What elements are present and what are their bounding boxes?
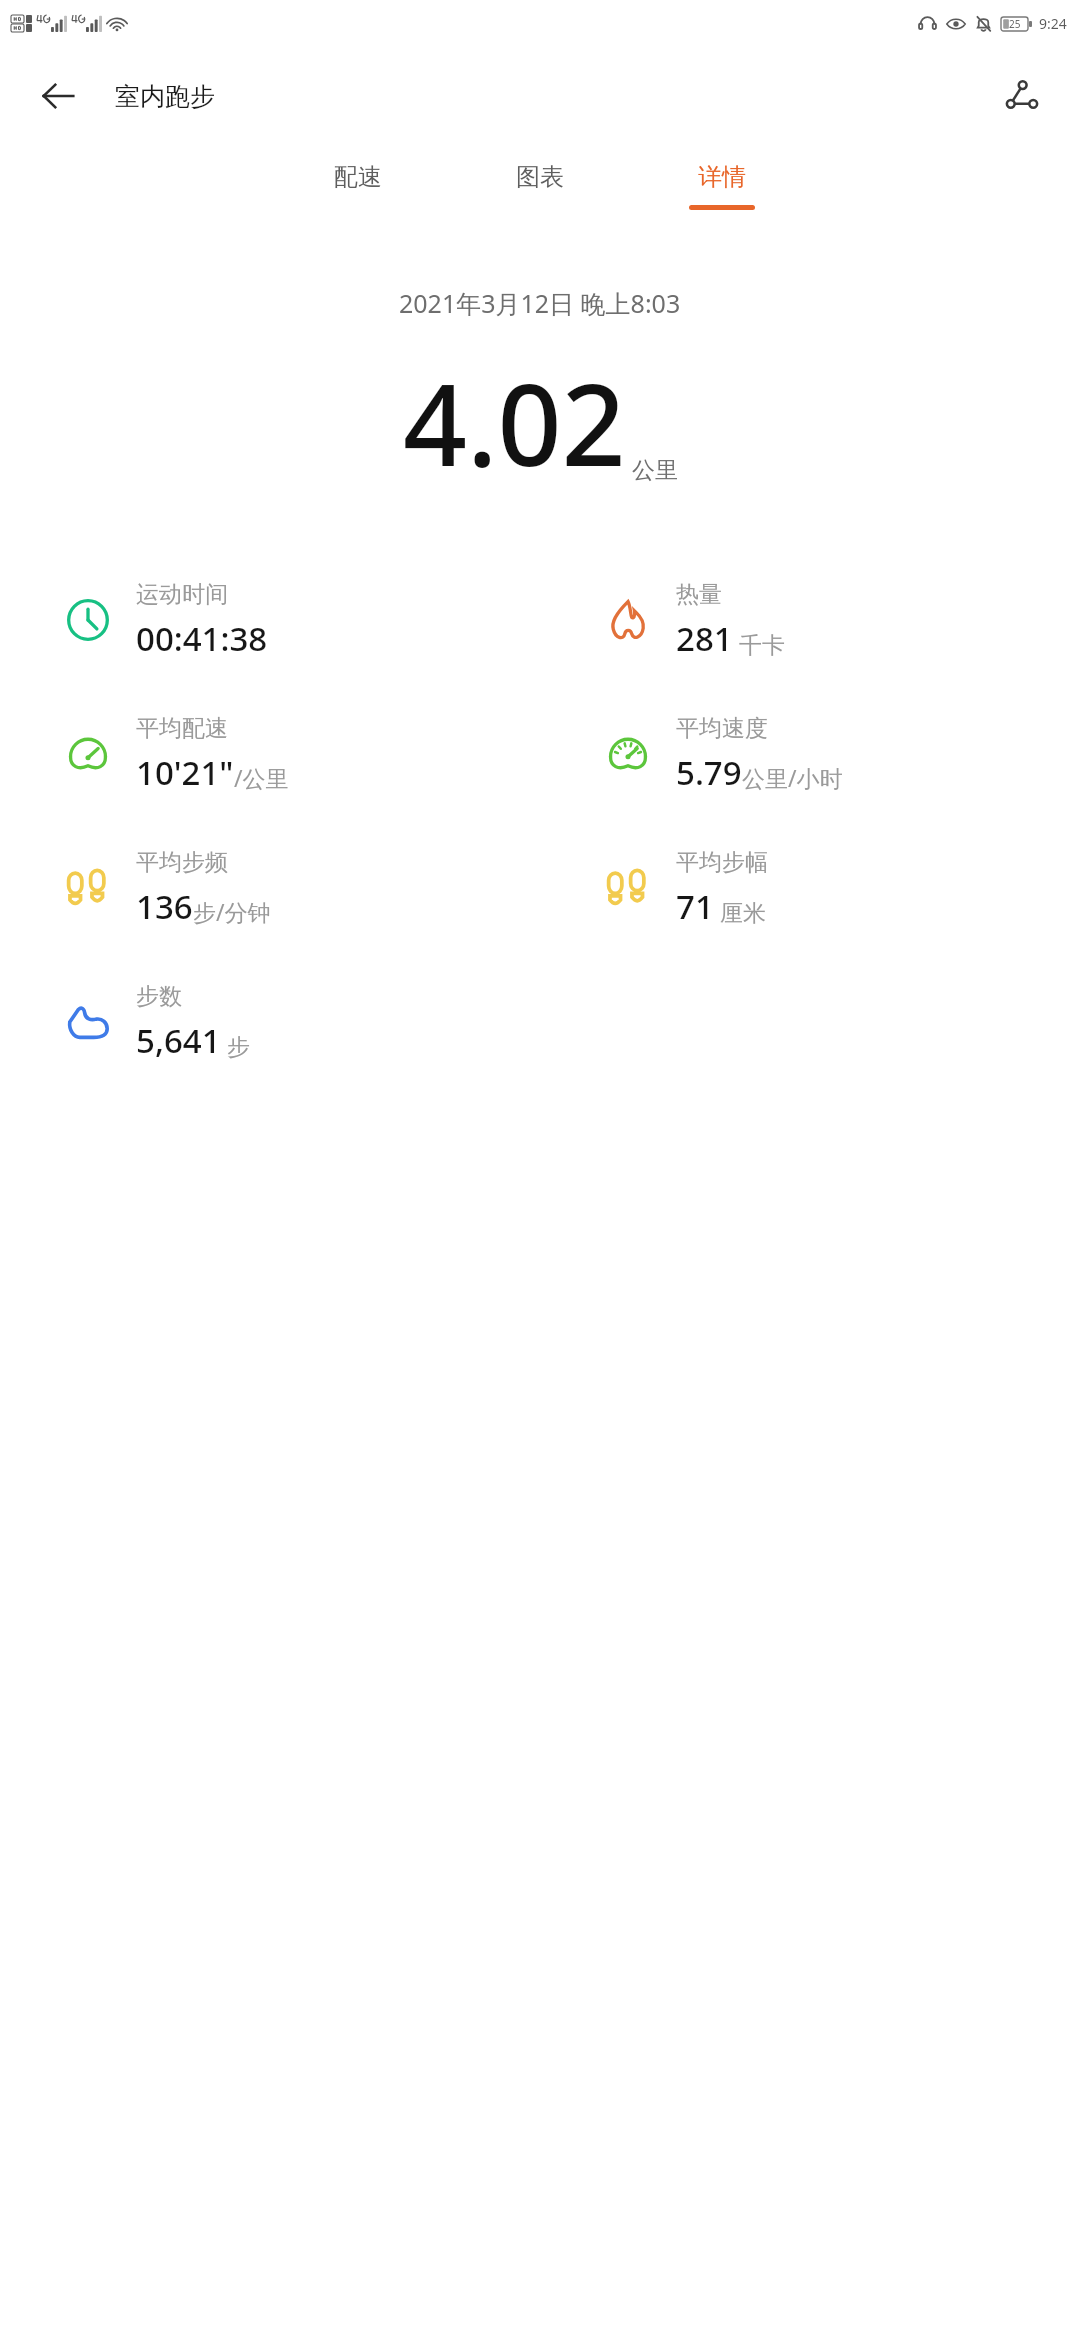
button[interactable]: Back xyxy=(26,64,90,128)
staticText: 步数 xyxy=(136,982,182,1011)
staticText: 厘米 xyxy=(714,896,766,927)
staticText: 步/分钟 xyxy=(193,896,271,927)
staticText: 平均速度 xyxy=(676,714,768,743)
button[interactable]: 详情 xyxy=(660,146,784,238)
staticText: 运动时间 xyxy=(136,580,228,609)
staticText: 热量 xyxy=(676,580,722,609)
button[interactable]: 平均配速 xyxy=(0,687,540,821)
staticText: 9:24 xyxy=(1039,14,1067,33)
staticText: 配速 xyxy=(334,162,382,192)
staticText: 5,641 xyxy=(136,1018,221,1063)
button[interactable]: 配速 xyxy=(296,146,420,238)
button[interactable]: 步数 xyxy=(0,955,540,1089)
staticText: 公里/小时 xyxy=(742,762,843,793)
staticText: 00:41:38 xyxy=(136,616,268,661)
staticText: 281 xyxy=(676,616,733,661)
staticText: 平均步幅 xyxy=(676,848,768,877)
staticText: 公里 xyxy=(632,456,678,485)
button[interactable]: Share xyxy=(990,64,1054,128)
staticText: 千卡 xyxy=(733,628,785,659)
staticText: 室内跑步 xyxy=(115,81,215,112)
button[interactable]: 平均速度 xyxy=(540,687,1080,821)
button[interactable]: 热量 xyxy=(540,553,1080,687)
button[interactable]: 平均步幅 xyxy=(540,821,1080,955)
button[interactable]: 运动时间 xyxy=(0,553,540,687)
staticText: 136 xyxy=(136,884,193,929)
staticText: 25 xyxy=(1009,17,1021,31)
staticText: 步 xyxy=(221,1030,250,1061)
staticText: 4.02 xyxy=(403,346,626,499)
staticText: /公里 xyxy=(234,762,289,793)
staticText: 详情 xyxy=(698,162,746,192)
staticText: 平均步频 xyxy=(136,848,228,877)
staticText: 5.79 xyxy=(676,750,742,795)
staticText: 2021年3月12日 晚上8:03 xyxy=(399,286,681,320)
staticText: 71 xyxy=(676,884,714,929)
staticText: 图表 xyxy=(516,162,564,192)
button[interactable]: 图表 xyxy=(478,146,602,238)
staticText: 平均配速 xyxy=(136,714,228,743)
button[interactable]: 平均步频 xyxy=(0,821,540,955)
staticText: 10'21" xyxy=(136,750,234,795)
